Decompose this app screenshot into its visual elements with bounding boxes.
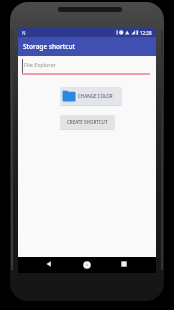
staticText: CHANGE COLOR	[78, 93, 113, 99]
button[interactable]	[118, 258, 130, 270]
staticText: File Explorer	[24, 61, 56, 68]
staticText: Storage shortcut	[23, 42, 76, 51]
staticText: CREATE SHORTCUT	[67, 119, 108, 125]
staticText: 12:28	[140, 30, 152, 36]
button[interactable]: CREATE SHORTCUT	[60, 115, 115, 129]
button[interactable]	[43, 258, 55, 270]
button[interactable]	[80, 258, 93, 271]
button[interactable]: CHANGE COLOR	[60, 87, 122, 105]
staticText: N	[22, 30, 26, 36]
